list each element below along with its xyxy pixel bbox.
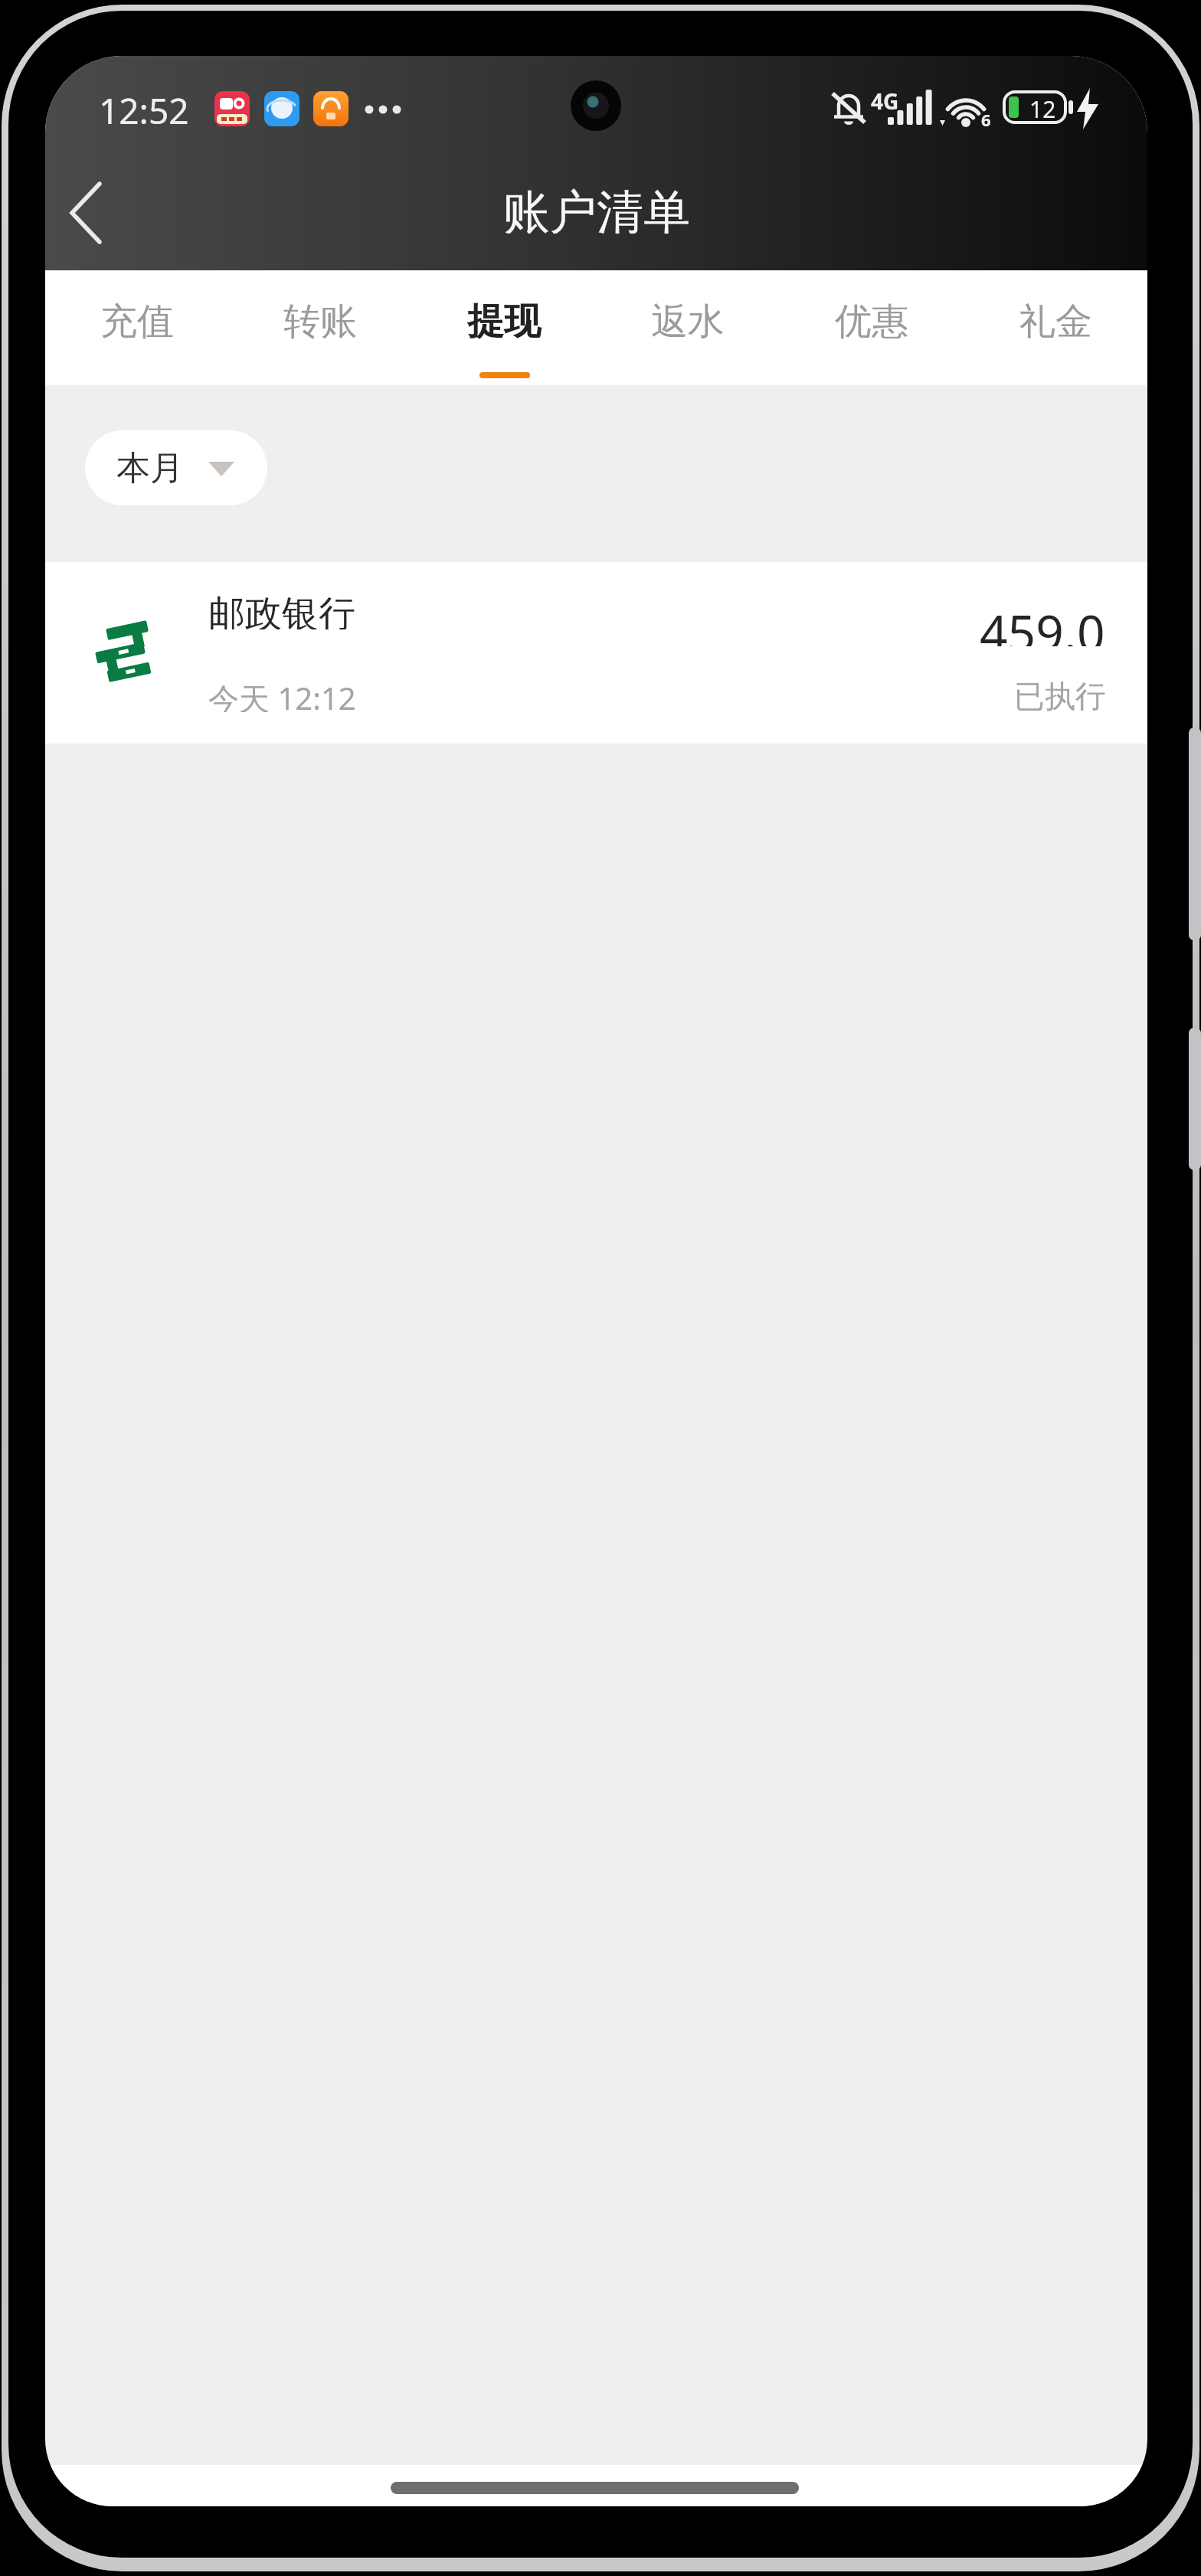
button[interactable]: 返水 (596, 270, 780, 385)
staticText: 今天 12:12 (208, 677, 356, 712)
button[interactable]: 转账 (228, 270, 412, 385)
button[interactable]: 优惠 (780, 270, 964, 385)
staticText: 12 (1029, 93, 1056, 121)
button[interactable]: 充值 (45, 270, 228, 385)
staticText: 邮政银行 (208, 591, 355, 629)
staticText: 返水 (651, 299, 725, 345)
staticText: 转账 (283, 299, 357, 345)
button[interactable]: 本月 (85, 430, 267, 505)
staticText: 账户清单 (503, 183, 690, 234)
staticText: 礼金 (1019, 299, 1092, 345)
staticText: 充值 (100, 299, 174, 345)
staticText: 优惠 (835, 299, 908, 345)
staticText: 提现 (467, 299, 541, 345)
button[interactable]: 提现 (412, 270, 596, 385)
staticText: 459.0 (980, 599, 1105, 646)
staticText: 已执行 (1014, 677, 1106, 712)
staticText: 12:52 (99, 87, 189, 131)
button[interactable]: 礼金 (964, 270, 1147, 385)
staticText: 6 (981, 108, 991, 128)
staticText: 本月 (116, 447, 184, 489)
button[interactable]: 邮政银行 (45, 562, 1147, 744)
button[interactable] (53, 175, 129, 251)
staticText: 4G (871, 87, 899, 111)
